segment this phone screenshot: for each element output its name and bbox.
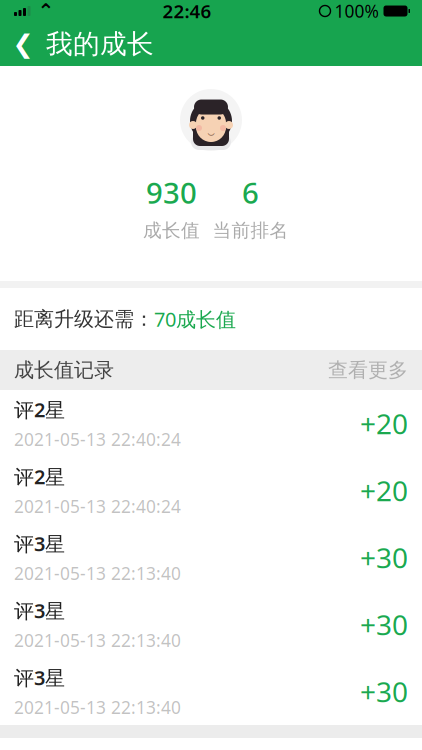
staticText: 评3星: [14, 664, 65, 691]
staticText: 评2星: [14, 463, 65, 490]
staticText: +20: [360, 405, 408, 442]
button[interactable]: 评3星: [0, 658, 422, 725]
staticText: +30: [360, 606, 408, 643]
staticText: +20: [360, 472, 408, 509]
staticText: ⌃: [37, 0, 54, 22]
button[interactable]: 评3星: [0, 591, 422, 658]
staticText: 我的成长: [46, 28, 154, 60]
button[interactable]: 评2星: [0, 457, 422, 524]
staticText: 当前排名: [212, 219, 288, 242]
staticText: 22:46: [162, 0, 211, 23]
staticText: 70成长值: [154, 306, 236, 332]
staticText: 成长值: [143, 219, 200, 242]
staticText: 评3星: [14, 597, 65, 624]
staticText: 2021-05-13 22:40:24: [14, 495, 181, 518]
staticText: 2021-05-13 22:13:40: [14, 696, 181, 719]
staticText: 评3星: [14, 530, 65, 557]
staticText: 2021-05-13 22:13:40: [14, 629, 181, 652]
button[interactable]: Back: [0, 22, 46, 66]
button[interactable]: 评2星: [0, 390, 422, 457]
staticText: 100%: [334, 0, 378, 22]
staticText: ‿: [207, 120, 214, 136]
staticText: 6: [242, 173, 259, 212]
staticText: ❮: [12, 30, 33, 58]
staticText: 评2星: [14, 396, 65, 423]
staticText: 查看更多: [328, 358, 408, 382]
staticText: 距离升级还需：: [14, 307, 154, 331]
staticText: 2021-05-13 22:13:40: [14, 562, 181, 585]
staticText: 成长值记录: [14, 358, 114, 382]
staticText: +30: [360, 539, 408, 576]
staticText: 2021-05-13 22:40:24: [14, 428, 181, 451]
button[interactable]: 查看更多: [328, 358, 408, 382]
staticText: 930: [146, 173, 197, 212]
staticText: +30: [360, 673, 408, 710]
button[interactable]: 评3星: [0, 524, 422, 591]
